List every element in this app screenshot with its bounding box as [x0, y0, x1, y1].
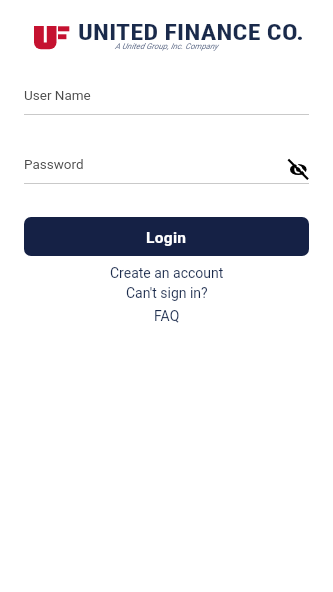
staticText: A United Group, Inc. Company	[0, 42, 333, 51]
button[interactable]: FAQ	[154, 308, 180, 324]
button[interactable]: Can't sign in?	[126, 285, 208, 301]
button[interactable]: Password	[24, 153, 309, 184]
staticText: Password	[24, 156, 84, 172]
staticText: Login	[146, 229, 187, 247]
staticText: FAQ	[154, 308, 180, 324]
staticText: Create an account	[110, 265, 224, 281]
button[interactable]: Create an account	[110, 265, 224, 281]
staticText: Can't sign in?	[126, 285, 208, 301]
button[interactable]: Login	[24, 217, 309, 256]
button[interactable]	[283, 155, 311, 183]
button[interactable]: User Name	[24, 85, 309, 115]
staticText: UNITED FINANCE CO.	[78, 20, 305, 46]
staticText: User Name	[24, 87, 91, 103]
